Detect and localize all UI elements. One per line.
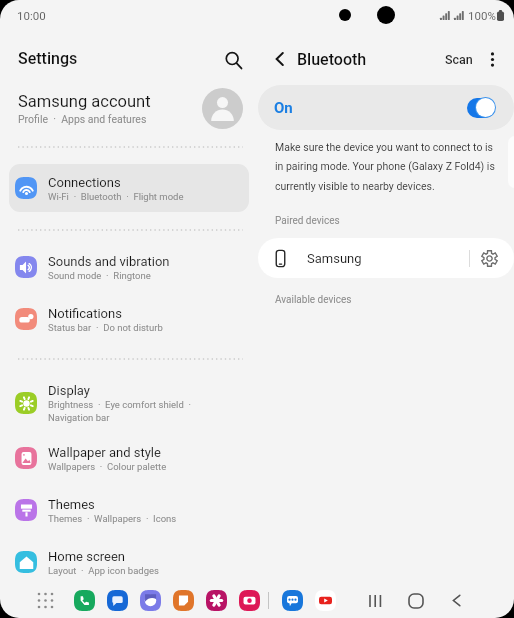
staticText: Notifications — [48, 306, 122, 321]
staticText: Samsung account — [18, 92, 151, 111]
staticText: Home screen — [48, 549, 125, 564]
button[interactable]: Wallpaper and style — [9, 434, 249, 482]
staticText: Layout · App icon badges — [48, 565, 159, 576]
staticText: 100% — [468, 9, 496, 22]
button[interactable]: Notifications — [9, 295, 249, 343]
staticText: Settings — [18, 49, 78, 68]
button[interactable]: Internet — [140, 590, 161, 611]
staticText: Connections — [48, 175, 121, 190]
button[interactable]: Back — [444, 588, 469, 613]
button[interactable]: Scan — [440, 47, 478, 72]
staticText: Scan — [445, 52, 473, 67]
button[interactable]: On — [258, 85, 514, 130]
button[interactable]: Display — [9, 379, 249, 427]
button[interactable]: YouTube — [315, 590, 336, 611]
button[interactable]: Recents — [362, 588, 387, 613]
staticText: Make sure the device you want to connect… — [275, 141, 497, 193]
button[interactable]: Home — [403, 588, 428, 613]
button[interactable]: More options — [479, 46, 505, 72]
button[interactable]: Messages — [107, 590, 128, 611]
staticText: Available devices — [275, 294, 352, 306]
button[interactable]: Connections — [9, 164, 249, 212]
button[interactable]: All apps — [33, 588, 58, 613]
button[interactable]: Galaxy Store — [206, 590, 227, 611]
staticText: Samsung — [307, 251, 362, 266]
staticText: Themes — [48, 497, 95, 512]
staticText: Sound mode · Ringtone — [48, 270, 151, 281]
button[interactable]: Samsung account — [0, 84, 255, 132]
staticText: Display — [48, 383, 90, 398]
staticText: Profile · Apps and features — [18, 113, 147, 125]
button[interactable]: Sounds and vibration — [9, 243, 249, 291]
button[interactable]: Device settings — [470, 239, 508, 277]
staticText: Wi-Fi · Bluetooth · Flight mode — [48, 191, 184, 202]
button[interactable]: Home screen — [9, 538, 249, 586]
button[interactable]: Back — [265, 44, 295, 74]
staticText: 10:00 — [17, 9, 46, 22]
staticText: Wallpapers · Colour palette — [48, 461, 167, 472]
button[interactable]: Chat — [282, 590, 303, 611]
staticText: Status bar · Do not disturb — [48, 322, 163, 333]
button[interactable]: Samsung — [258, 238, 514, 278]
staticText: Wallpaper and style — [48, 445, 161, 460]
button[interactable]: Search — [218, 45, 248, 75]
button[interactable]: Phone — [74, 590, 95, 611]
staticText: Brightness · Eye comfort shield · Naviga… — [48, 399, 191, 424]
button[interactable]: Themes — [9, 486, 249, 534]
staticText: Paired devices — [275, 215, 340, 227]
button[interactable]: Notes — [173, 590, 194, 611]
staticText: Sounds and vibration — [48, 254, 170, 269]
staticText: Bluetooth — [297, 50, 367, 69]
button[interactable]: Camera — [239, 590, 260, 611]
staticText: Themes · Wallpapers · Icons — [48, 513, 177, 524]
staticText: On — [274, 99, 293, 117]
